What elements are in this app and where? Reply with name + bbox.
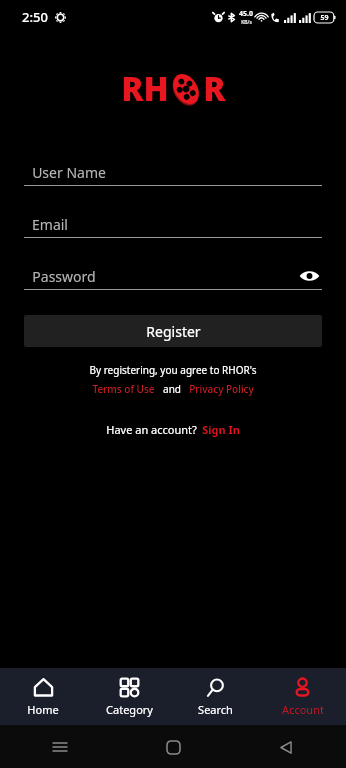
button[interactable]: Password <box>24 263 322 290</box>
button[interactable]: Account <box>259 671 346 723</box>
button[interactable]: Recents <box>43 730 77 764</box>
staticText: By registering, you agree to RHOR's <box>89 363 257 377</box>
staticText: Privacy Policy <box>189 382 254 396</box>
button[interactable]: Category <box>86 671 172 723</box>
staticText: Password <box>32 267 96 286</box>
staticText: 59 <box>320 13 329 23</box>
button[interactable]: Email <box>24 211 322 238</box>
button[interactable]: Home <box>156 730 190 764</box>
staticText: Terms of Use <box>92 382 155 396</box>
staticText: KB/s <box>241 19 252 26</box>
staticText: Have an account? <box>106 422 197 437</box>
staticText: Register <box>146 322 201 341</box>
button[interactable]: Terms of Use <box>92 382 155 396</box>
staticText: User Name <box>32 163 106 182</box>
staticText: 45.0 <box>239 9 253 19</box>
button[interactable]: Search <box>172 671 259 723</box>
staticText: and <box>163 382 181 396</box>
button[interactable]: Show password <box>296 263 322 289</box>
button[interactable]: Privacy Policy <box>189 382 254 396</box>
button[interactable]: Home <box>0 671 86 723</box>
staticText: Sign In <box>202 422 240 437</box>
staticText: RH <box>121 66 169 111</box>
staticText: Account <box>282 702 324 717</box>
staticText: Email <box>32 215 68 234</box>
button[interactable]: User Name <box>24 159 322 186</box>
button[interactable]: Register <box>24 315 322 347</box>
staticText: Home <box>27 702 59 717</box>
staticText: R <box>203 66 226 111</box>
staticText: Search <box>198 702 233 717</box>
button[interactable]: Sign In <box>202 422 240 437</box>
staticText: 2:50 <box>22 8 48 26</box>
button[interactable]: Back <box>269 730 303 764</box>
staticText: Category <box>106 702 153 717</box>
